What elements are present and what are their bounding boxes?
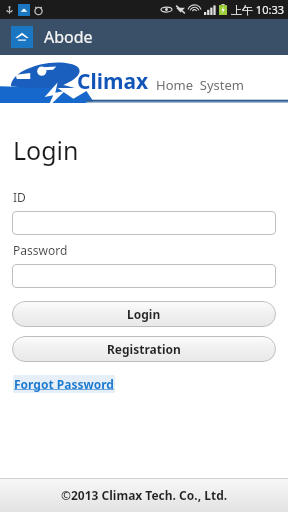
button[interactable] <box>12 264 276 288</box>
button[interactable] <box>12 211 276 235</box>
staticText: Home System <box>156 76 244 94</box>
staticText: Password <box>13 242 68 258</box>
staticText: Login <box>13 133 79 167</box>
staticText: Login <box>127 306 161 322</box>
button[interactable]: Login <box>12 301 276 327</box>
staticText: Registration <box>107 341 181 357</box>
staticText: Climax <box>77 67 149 96</box>
staticText: Abode <box>44 26 93 48</box>
staticText: 上午 10:33 <box>231 2 284 17</box>
staticText: ©2013 Climax Tech. Co., Ltd. <box>61 487 228 503</box>
other: Abode app icon <box>11 26 33 48</box>
staticText: ID <box>13 189 26 205</box>
button[interactable]: Forgot Password <box>13 375 115 393</box>
staticText: Forgot Password <box>14 376 114 392</box>
button[interactable]: Registration <box>12 336 276 362</box>
